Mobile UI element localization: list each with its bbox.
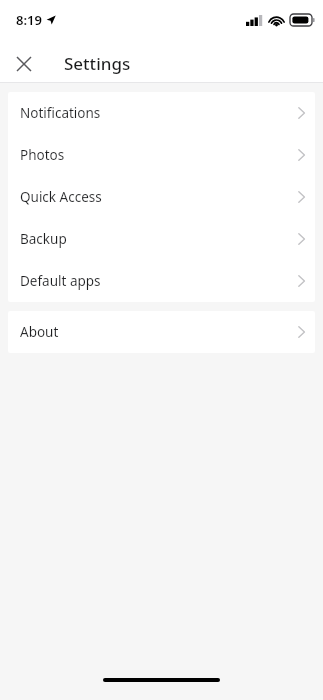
staticText: About	[20, 323, 59, 341]
button[interactable]: Close	[5, 45, 43, 83]
staticText: Notifications	[20, 104, 101, 122]
staticText: Default apps	[20, 272, 101, 290]
button[interactable]: Quick Access	[8, 176, 315, 218]
staticText: Settings	[64, 52, 131, 75]
staticText: 8:19	[16, 11, 42, 29]
staticText: Backup	[20, 230, 67, 248]
staticText: Photos	[20, 146, 65, 164]
button[interactable]: Backup	[8, 218, 315, 260]
staticText: Quick Access	[20, 188, 102, 206]
button[interactable]: Photos	[8, 134, 315, 176]
button[interactable]: About	[8, 311, 315, 353]
button[interactable]: Notifications	[8, 92, 315, 134]
button[interactable]: Default apps	[8, 260, 315, 302]
